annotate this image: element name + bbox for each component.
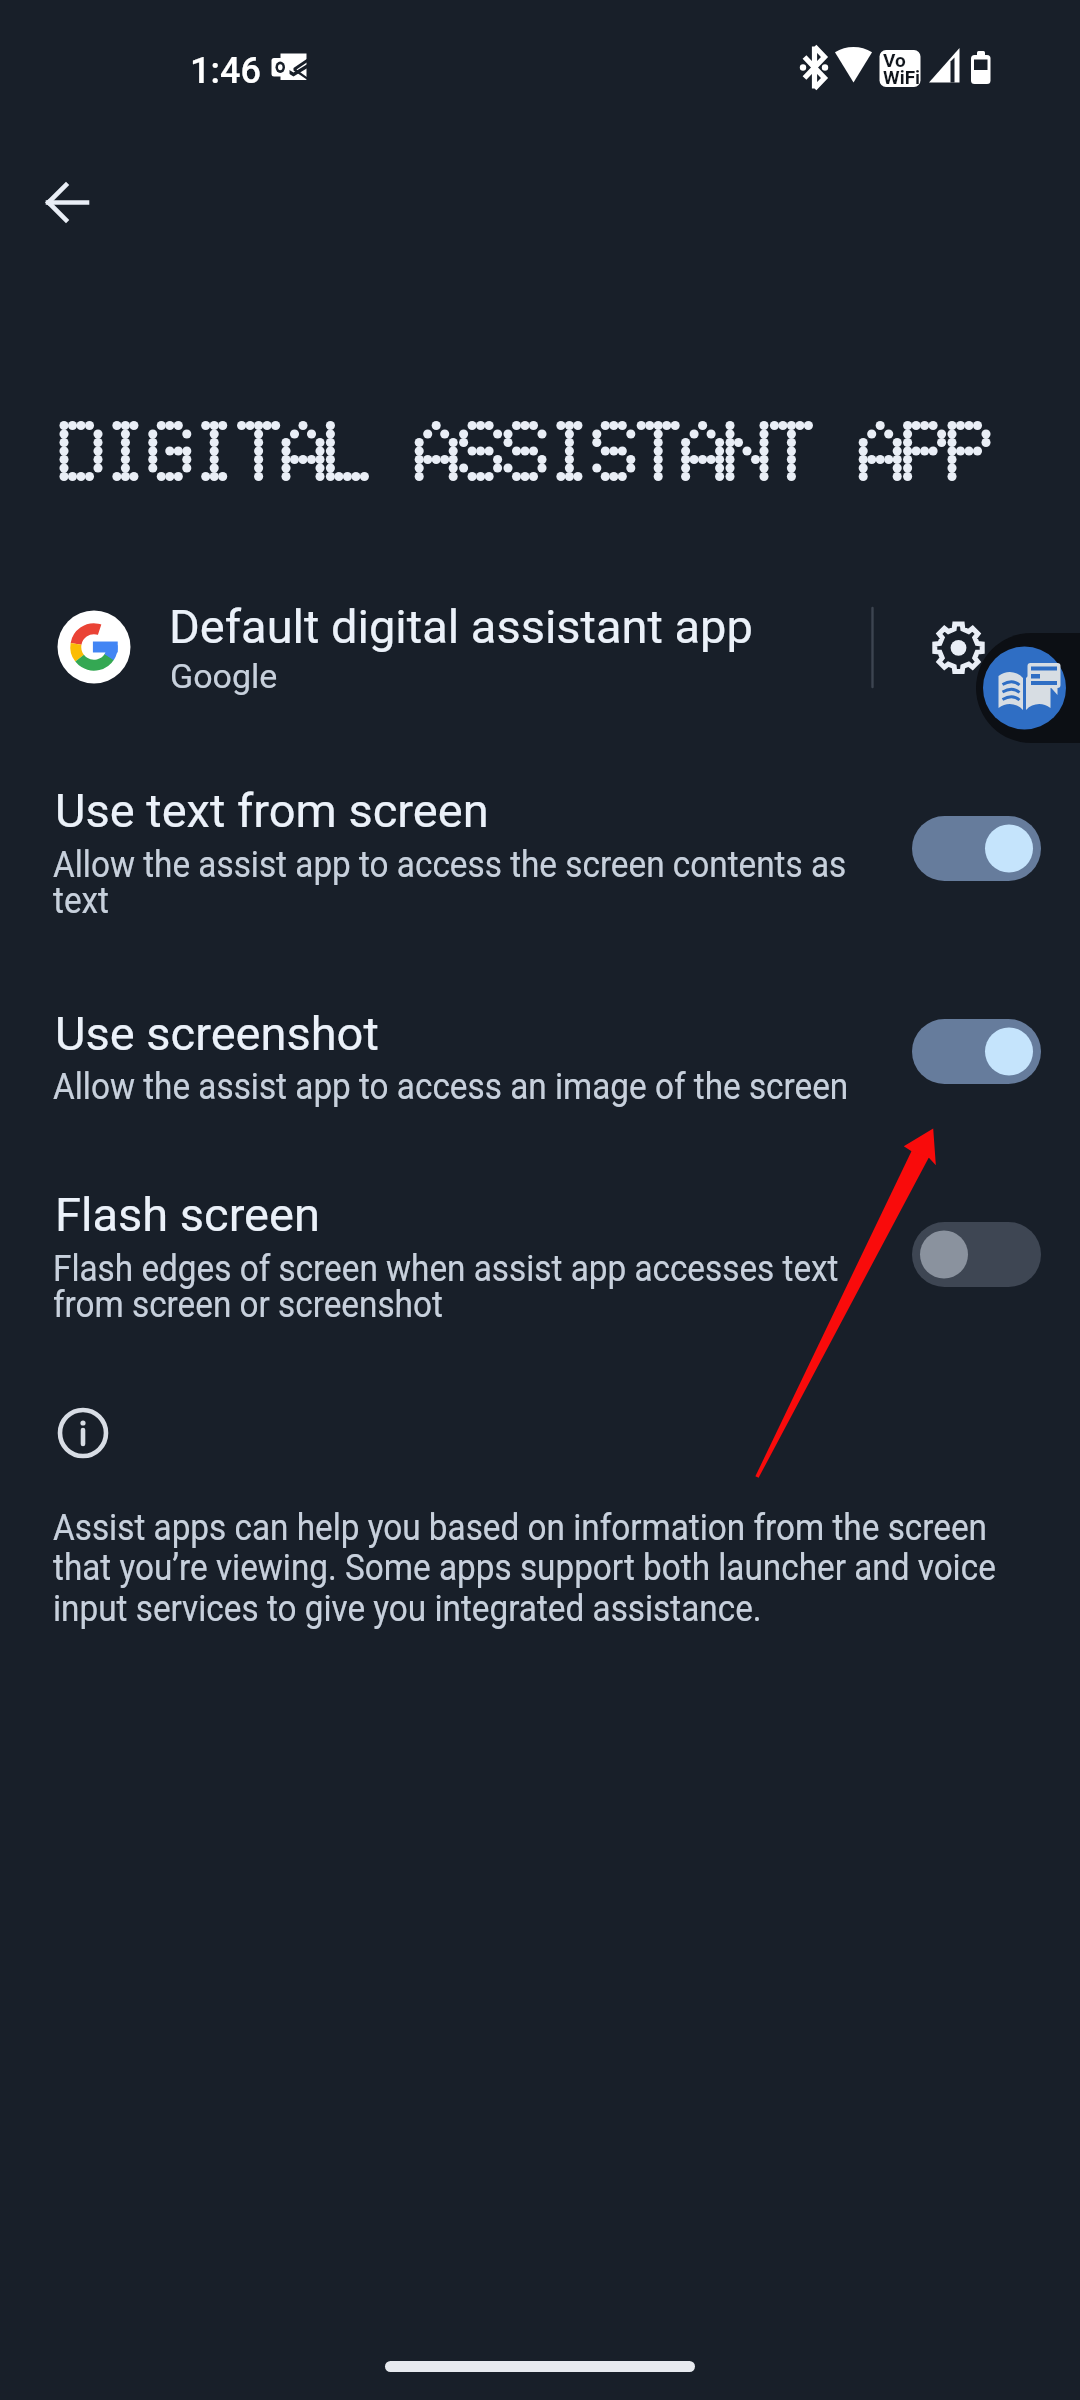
staticText: Allow the assist app to access an image … (53, 1065, 849, 1108)
button[interactable]: Settings (914, 604, 1003, 693)
staticText: WiFi (883, 66, 921, 88)
button[interactable]: Translate overlay (976, 633, 1080, 743)
staticText: that you’re viewing. Some apps support b… (53, 1546, 996, 1589)
staticText: Google (170, 656, 278, 696)
staticText: Assist apps can help you based on inform… (53, 1506, 987, 1549)
staticText: 1:46 (190, 50, 261, 92)
button[interactable]: Use text from screen (0, 756, 1080, 956)
button[interactable]: Flash screen, off (912, 1222, 1041, 1287)
staticText: Allow the assist app to access the scree… (53, 843, 847, 886)
button[interactable]: Back (24, 158, 112, 246)
button[interactable]: Default digital assistant app, Google (0, 578, 866, 718)
button[interactable]: Flash screen (0, 1160, 1080, 1360)
staticText: Flash screen (55, 1187, 320, 1242)
staticText: input services to give you integrated as… (53, 1587, 762, 1630)
staticText: text (53, 879, 110, 922)
staticText: Use text from screen (55, 783, 489, 838)
staticText: Vo (883, 49, 906, 71)
button[interactable]: Use screenshot (0, 978, 1080, 1138)
staticText: from screen or screenshot (53, 1283, 444, 1326)
staticText: Use screenshot (55, 1006, 379, 1061)
staticText: Flash edges of screen when assist app ac… (53, 1247, 839, 1290)
staticText: Default digital assistant app (169, 599, 753, 654)
button[interactable]: Use screenshot, on (912, 1019, 1041, 1084)
button[interactable]: Use text from screen, on (912, 816, 1041, 881)
